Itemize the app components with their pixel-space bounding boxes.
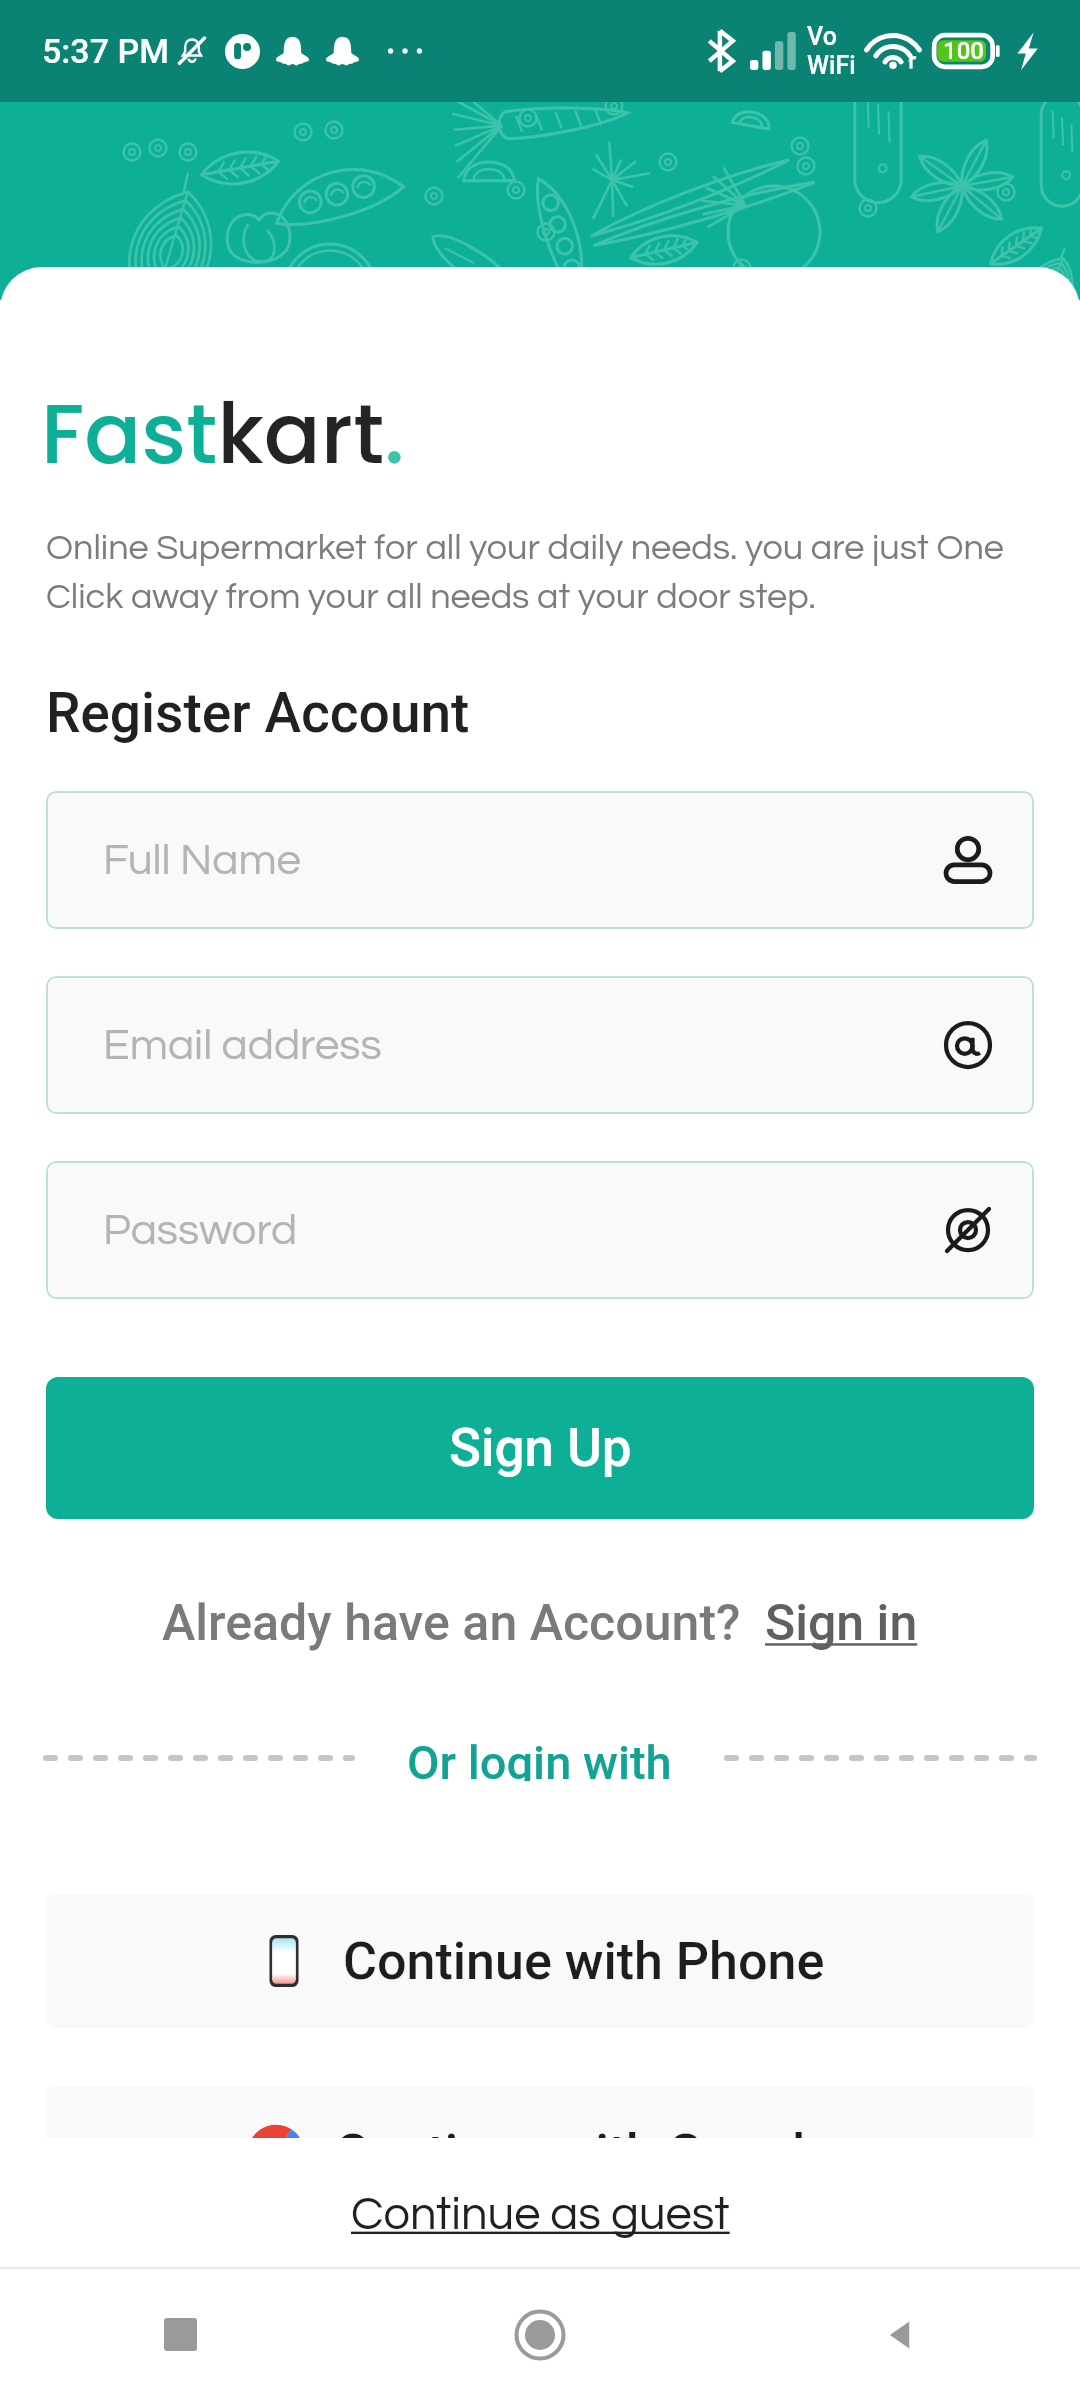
- button[interactable]: Sign Up: [46, 1377, 1034, 1519]
- staticText: Continue as guest: [351, 2190, 730, 2238]
- staticText: Or login with: [407, 1735, 672, 1781]
- button[interactable]: Full Name: [46, 791, 1034, 929]
- staticText: Fastkart.: [41, 375, 405, 493]
- button[interactable]: Email address: [46, 976, 1034, 1114]
- staticText: Vo: [807, 22, 837, 51]
- staticText: Continue with Google: [335, 2123, 834, 2184]
- button[interactable]: Password: [46, 1161, 1034, 1299]
- staticText: Register Account: [46, 681, 470, 745]
- button[interactable]: Continue with Google: [46, 2086, 1034, 2220]
- staticText: WiFi: [807, 51, 856, 80]
- button[interactable]: Back: [720, 2269, 1080, 2400]
- button[interactable]: Sign in: [765, 1594, 918, 1653]
- staticText: 5:37 PM: [42, 31, 169, 71]
- staticText: Sign Up: [449, 1417, 632, 1479]
- staticText: Password: [103, 1208, 298, 1253]
- staticText: Full Name: [103, 838, 302, 883]
- staticText: 100: [943, 37, 984, 65]
- button[interactable]: Recent apps: [0, 2269, 360, 2400]
- staticText: Already have an Account?: [162, 1594, 741, 1653]
- button[interactable]: Continue as guest: [0, 2138, 1080, 2267]
- button[interactable]: Continue with Phone: [46, 1894, 1034, 2028]
- staticText: Online Supermarket for all your daily ne…: [46, 529, 1034, 616]
- staticText: Email address: [103, 1023, 382, 1068]
- staticText: Continue with Phone: [343, 1931, 825, 1992]
- button[interactable]: Home: [360, 2269, 720, 2400]
- staticText: Sign in: [765, 1594, 918, 1653]
